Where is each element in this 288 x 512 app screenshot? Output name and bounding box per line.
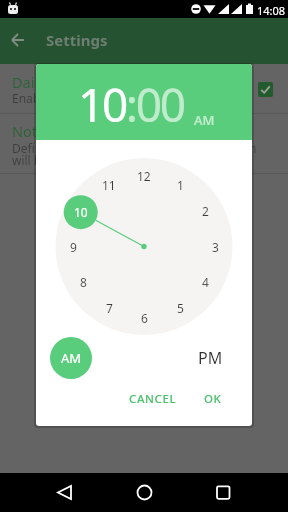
staticText: 14:08	[257, 3, 286, 18]
staticText: 1	[177, 177, 184, 193]
button[interactable]	[2, 24, 34, 56]
staticText: CANCEL	[129, 391, 177, 407]
staticText: will be shown	[12, 152, 89, 168]
staticText: AM	[61, 349, 82, 367]
staticText: 11	[102, 177, 116, 193]
staticText: PM	[198, 347, 223, 365]
button[interactable]: OK	[198, 386, 228, 411]
staticText: 7	[106, 300, 113, 316]
staticText: 5	[177, 300, 184, 316]
staticText: Settings	[46, 30, 108, 50]
button[interactable]	[128, 477, 160, 509]
staticText: 6	[141, 310, 148, 326]
staticText: 10:00	[78, 73, 184, 136]
staticText: 2	[202, 203, 209, 219]
staticText: Notifications	[12, 121, 99, 141]
staticText: Daily reminder	[12, 72, 113, 92]
button[interactable]: AM	[194, 111, 215, 129]
button[interactable]	[48, 477, 80, 509]
button[interactable]: CANCEL	[122, 386, 184, 411]
staticText: n	[249, 140, 257, 156]
staticText: Define how notifications are shown	[12, 140, 211, 156]
staticText: OK	[204, 391, 222, 407]
staticText: 12	[137, 168, 151, 184]
button[interactable]	[258, 82, 273, 97]
button[interactable]: PM	[195, 347, 225, 365]
staticText: 10	[74, 204, 88, 220]
staticText: 3	[212, 239, 219, 255]
staticText: 4	[202, 274, 209, 290]
staticText: 9	[70, 239, 77, 255]
button[interactable]	[207, 477, 239, 509]
button[interactable]: AM	[50, 337, 92, 379]
staticText: Enabled at 10:00 AM	[12, 90, 128, 106]
staticText: 8	[80, 274, 87, 290]
